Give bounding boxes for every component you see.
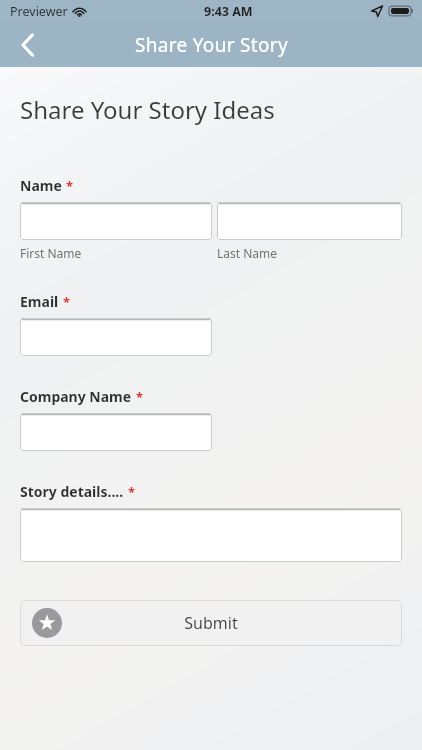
button[interactable] [20,202,212,240]
staticText: * [128,483,136,501]
button[interactable]: Back [6,23,50,67]
staticText: Story details.... [20,482,124,501]
staticText: Company Name [20,387,132,406]
staticText: 9:43 AM [204,3,253,20]
staticText: Submit [184,612,238,634]
staticText: Name [20,176,62,195]
button[interactable] [217,202,402,240]
staticText: Share Your Story Ideas [20,93,275,126]
button[interactable] [20,318,212,356]
button[interactable]: Submit [20,600,402,646]
staticText: Previewer [10,3,68,20]
staticText: Last Name [217,245,278,261]
staticText: * [136,388,144,406]
staticText: * [66,177,74,195]
staticText: First Name [20,245,82,261]
staticText: * [63,293,71,311]
button[interactable] [20,413,212,451]
staticText: Email [20,292,59,311]
button[interactable] [20,508,402,562]
staticText: Share Your Story [135,32,288,58]
